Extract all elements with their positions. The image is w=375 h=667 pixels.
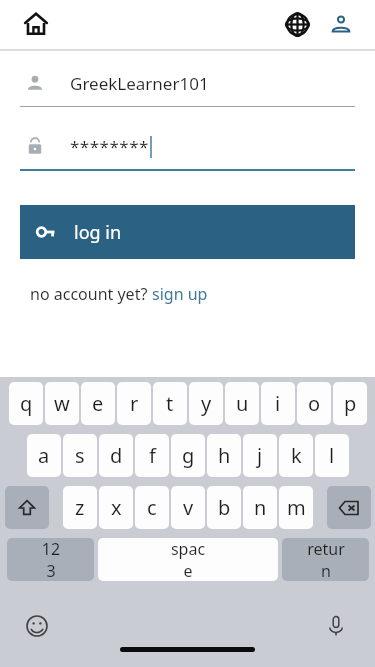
- staticText: return: [305, 538, 347, 581]
- staticText: g: [182, 442, 195, 469]
- button[interactable]: g: [171, 434, 205, 477]
- staticText: w: [54, 390, 70, 417]
- button[interactable]: Account: [319, 2, 363, 46]
- staticText: t: [166, 390, 174, 417]
- button[interactable]: y: [189, 382, 223, 425]
- staticText: b: [218, 494, 231, 521]
- staticText: d: [110, 442, 123, 469]
- button[interactable]: n: [243, 486, 277, 529]
- staticText: q: [20, 390, 33, 417]
- button[interactable]: ********: [20, 129, 355, 163]
- staticText: GreekLearner101: [70, 72, 209, 95]
- button[interactable]: o: [297, 382, 331, 425]
- button[interactable]: c: [135, 486, 169, 529]
- staticText: e: [92, 390, 104, 417]
- staticText: o: [308, 390, 321, 417]
- button[interactable]: w: [45, 382, 79, 425]
- button[interactable]: m: [279, 486, 313, 529]
- button[interactable]: u: [225, 382, 259, 425]
- staticText: j: [257, 442, 263, 469]
- staticText: k: [291, 442, 302, 469]
- staticText: space: [169, 538, 207, 581]
- staticText: h: [218, 442, 231, 469]
- button[interactable]: l: [315, 434, 349, 477]
- staticText: s: [75, 442, 85, 469]
- staticText: r: [130, 390, 139, 417]
- staticText: c: [147, 494, 157, 521]
- button[interactable]: GreekLearner101: [20, 66, 355, 100]
- staticText: 123: [38, 538, 64, 581]
- button[interactable]: b: [207, 486, 241, 529]
- button[interactable]: r: [117, 382, 151, 425]
- button[interactable]: f: [135, 434, 169, 477]
- button[interactable]: Backspace: [327, 486, 371, 529]
- staticText: i: [275, 390, 281, 417]
- button[interactable]: Language: [275, 2, 319, 46]
- staticText: p: [344, 390, 357, 417]
- staticText: log in: [74, 220, 122, 245]
- staticText: v: [183, 494, 194, 521]
- button[interactable]: x: [99, 486, 133, 529]
- button[interactable]: h: [207, 434, 241, 477]
- staticText: no account yet?: [30, 283, 152, 305]
- staticText: z: [75, 494, 85, 521]
- button[interactable]: Home: [14, 2, 58, 46]
- button[interactable]: a: [27, 434, 61, 477]
- button[interactable]: Shift: [5, 486, 49, 529]
- button[interactable]: space: [98, 538, 278, 581]
- button[interactable]: sign up: [152, 283, 208, 305]
- button[interactable]: d: [99, 434, 133, 477]
- staticText: y: [201, 390, 212, 417]
- staticText: f: [149, 442, 156, 469]
- button[interactable]: 123: [7, 538, 94, 581]
- button[interactable]: k: [279, 434, 313, 477]
- button[interactable]: v: [171, 486, 205, 529]
- button[interactable]: z: [63, 486, 97, 529]
- button[interactable]: return: [282, 538, 369, 581]
- button[interactable]: j: [243, 434, 277, 477]
- button[interactable]: Voice input: [319, 609, 353, 643]
- button[interactable]: p: [333, 382, 367, 425]
- button[interactable]: Emoji: [20, 609, 54, 643]
- staticText: x: [111, 494, 122, 521]
- staticText: a: [38, 442, 50, 469]
- button[interactable]: e: [81, 382, 115, 425]
- staticText: ********: [70, 135, 149, 158]
- button[interactable]: q: [9, 382, 43, 425]
- staticText: sign up: [152, 283, 208, 305]
- button[interactable]: log in: [20, 205, 355, 259]
- button[interactable]: t: [153, 382, 187, 425]
- staticText: n: [254, 494, 267, 521]
- button[interactable]: i: [261, 382, 295, 425]
- staticText: l: [329, 442, 335, 469]
- staticText: u: [236, 390, 249, 417]
- button[interactable]: s: [63, 434, 97, 477]
- staticText: m: [287, 494, 306, 521]
